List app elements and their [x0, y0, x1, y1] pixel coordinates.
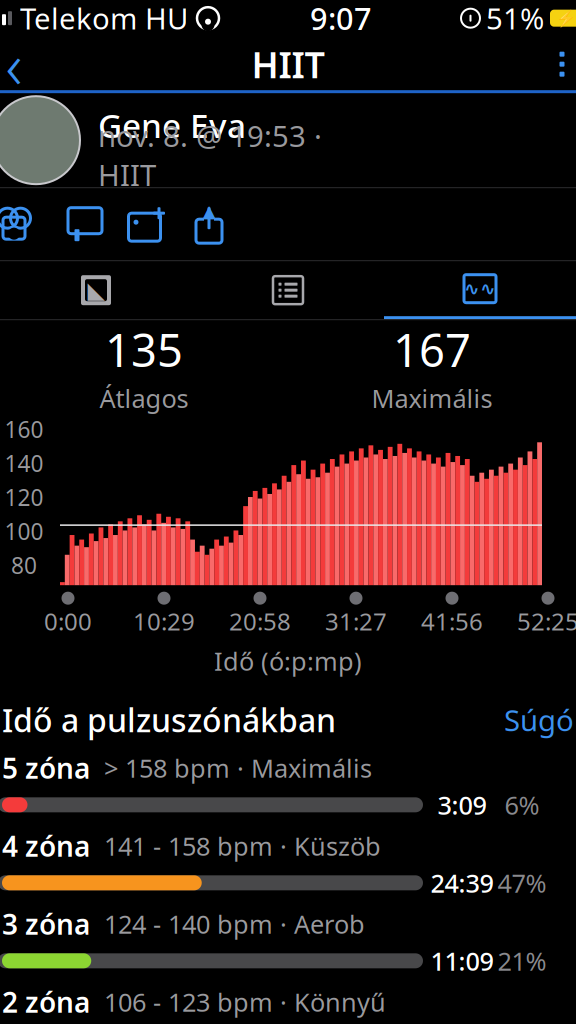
staticText: Súgó: [504, 700, 574, 739]
staticText: Idő (ó:p:mp): [214, 644, 362, 678]
staticText: ⚡: [556, 9, 576, 27]
staticText: 100: [4, 516, 43, 546]
staticText: 135: [105, 319, 183, 379]
staticText: Átlagos: [99, 381, 188, 415]
button[interactable]: Share: [178, 193, 240, 255]
staticText: 3 zóna: [2, 905, 90, 942]
button[interactable]: Like: [0, 193, 54, 255]
button[interactable]: Back: [0, 38, 44, 90]
staticText: Gene Eva: [98, 103, 246, 147]
staticText: 20:58: [229, 605, 291, 637]
button[interactable]: Comment: [54, 193, 116, 255]
staticText: 24:39: [430, 866, 493, 900]
staticText: > 158 bpm · Maximális: [90, 751, 372, 785]
staticText: 52:25: [517, 605, 576, 637]
staticText: 167: [393, 319, 471, 379]
button[interactable]: Details list: [192, 261, 384, 319]
staticText: 11:09: [430, 944, 493, 978]
staticText: ◣: [87, 277, 104, 303]
staticText: 0:00: [44, 605, 92, 637]
staticText: ‹: [5, 22, 22, 107]
staticText: HIIT: [251, 40, 324, 88]
staticText: 3:09: [437, 788, 486, 822]
staticText: Telekom HU: [20, 0, 188, 38]
staticText: 9:07: [310, 0, 372, 38]
button[interactable]: Charts: [384, 261, 576, 319]
staticText: nov. 8. @ 19:53 · HIIT: [98, 116, 322, 194]
staticText: ▲: [202, 201, 215, 221]
staticText: 106 - 123 bpm · Könnyű: [90, 985, 386, 1019]
staticText: 21%: [497, 944, 546, 978]
button[interactable]: Súgó: [504, 700, 574, 739]
staticText: 47%: [497, 866, 546, 900]
staticText: 31:27: [325, 605, 387, 637]
staticText: 80: [11, 550, 37, 580]
button[interactable]: Map: [0, 261, 192, 319]
staticText: 10:29: [133, 605, 195, 637]
staticText: 2 zóna: [2, 983, 90, 1020]
staticText: 5 zóna: [2, 749, 90, 786]
button[interactable]: More options: [532, 38, 576, 90]
staticText: Idő a pulzuszónákban: [2, 699, 336, 741]
staticText: ∿∿: [464, 278, 496, 299]
button[interactable]: Add photo: [116, 193, 178, 255]
staticText: 160: [4, 414, 43, 444]
staticText: Maximális: [371, 381, 492, 415]
staticText: 120: [4, 482, 43, 512]
staticText: 141 - 158 bpm · Küszöb: [90, 829, 381, 863]
staticText: 6%: [504, 788, 539, 822]
staticText: 140: [4, 448, 43, 478]
staticText: 51%: [486, 0, 544, 38]
staticText: 124 - 140 bpm · Aerob: [90, 907, 365, 941]
staticText: 4 zóna: [2, 827, 90, 864]
staticText: 41:56: [421, 605, 483, 637]
